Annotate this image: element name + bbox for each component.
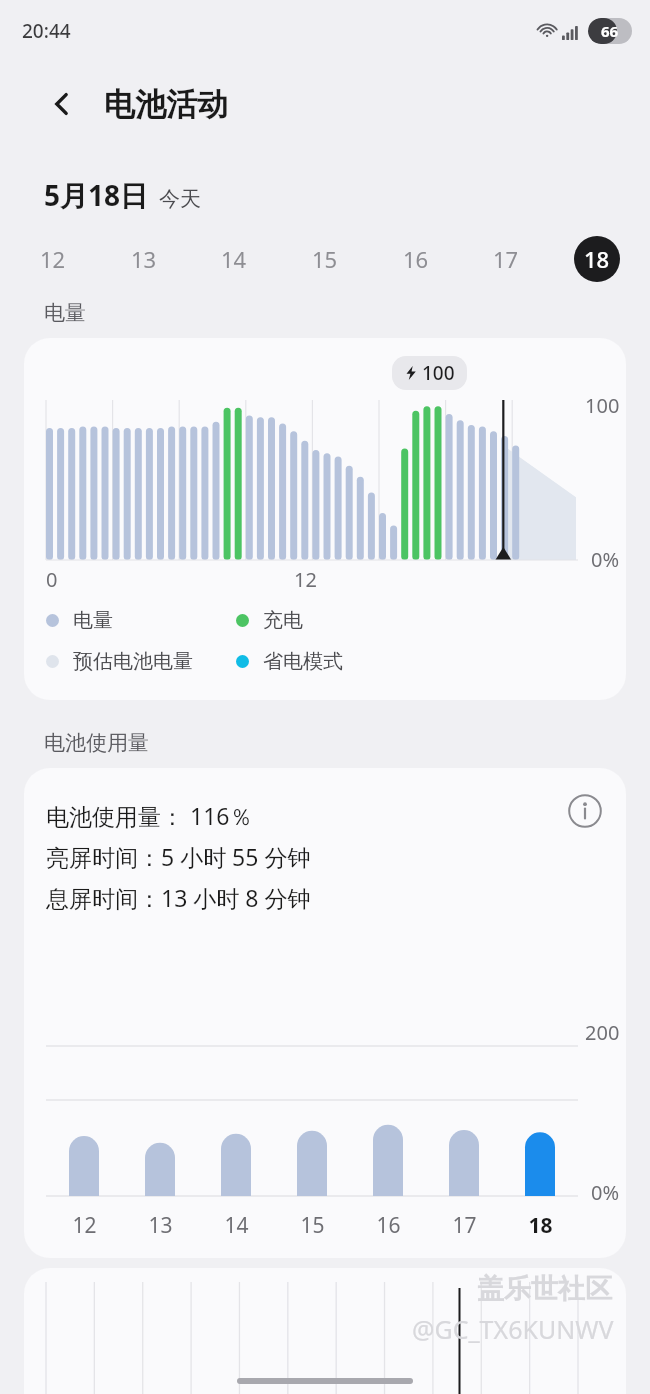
button[interactable]: 16 — [393, 236, 439, 282]
staticText: 亮屏时间：5 小时 55 分钟 — [46, 841, 311, 872]
staticText: 预估电池电量 — [73, 649, 193, 674]
button[interactable]: 18 — [574, 236, 620, 282]
staticText: 12 — [72, 1211, 97, 1240]
staticText: 息屏时间：13 小时 8 分钟 — [46, 882, 311, 913]
staticText: 20:44 — [22, 18, 71, 44]
staticText: 15 — [300, 1211, 325, 1240]
staticText: 盖乐世社区 — [477, 1272, 612, 1306]
staticText: 17 — [452, 1211, 477, 1240]
staticText: 电池使用量： 116％ — [46, 800, 253, 831]
staticText: 17 — [493, 244, 519, 274]
button[interactable]: 100 — [24, 338, 626, 700]
staticText: 0 — [46, 566, 58, 593]
button[interactable]: 17 — [483, 236, 529, 282]
staticText: 100 — [585, 392, 620, 419]
staticText: 12 — [40, 244, 66, 274]
button[interactable]: 盖乐世社区 — [24, 1268, 626, 1394]
staticText: 16 — [376, 1211, 401, 1240]
staticText: 15 — [312, 244, 338, 274]
staticText: 18 — [528, 1211, 553, 1240]
staticText: 100 — [422, 360, 455, 386]
button[interactable]: 详细信息 — [564, 790, 606, 832]
button[interactable]: 电池使用量： 116％ — [24, 768, 626, 1258]
staticText: 电量 — [73, 608, 113, 633]
staticText: 电池活动 — [104, 85, 228, 124]
staticText: 14 — [221, 244, 247, 274]
staticText: 电量 — [44, 300, 86, 326]
staticText: @GC_TX6KUNWV — [412, 1312, 614, 1346]
staticText: 13 — [131, 244, 157, 274]
staticText: 5月18日 — [44, 176, 149, 214]
staticText: 13 — [148, 1211, 173, 1240]
staticText: 16 — [403, 244, 429, 274]
staticText: 充电 — [263, 608, 303, 633]
button[interactable]: 13 — [121, 236, 167, 282]
staticText: 18 — [584, 244, 610, 274]
staticText: 0% — [591, 1179, 620, 1206]
button[interactable]: 14 — [211, 236, 257, 282]
staticText: 66 — [601, 21, 619, 41]
button[interactable]: 15 — [302, 236, 348, 282]
staticText: 200 — [585, 1019, 620, 1046]
staticText: 12 — [294, 566, 317, 593]
button[interactable]: 12 — [30, 236, 76, 282]
staticText: 14 — [224, 1211, 249, 1240]
staticText: 0% — [591, 546, 620, 573]
staticText: 电池使用量 — [44, 730, 149, 756]
staticText: 省电模式 — [263, 649, 343, 674]
staticText: 今天 — [159, 186, 201, 212]
button[interactable]: 返回 — [40, 82, 84, 126]
